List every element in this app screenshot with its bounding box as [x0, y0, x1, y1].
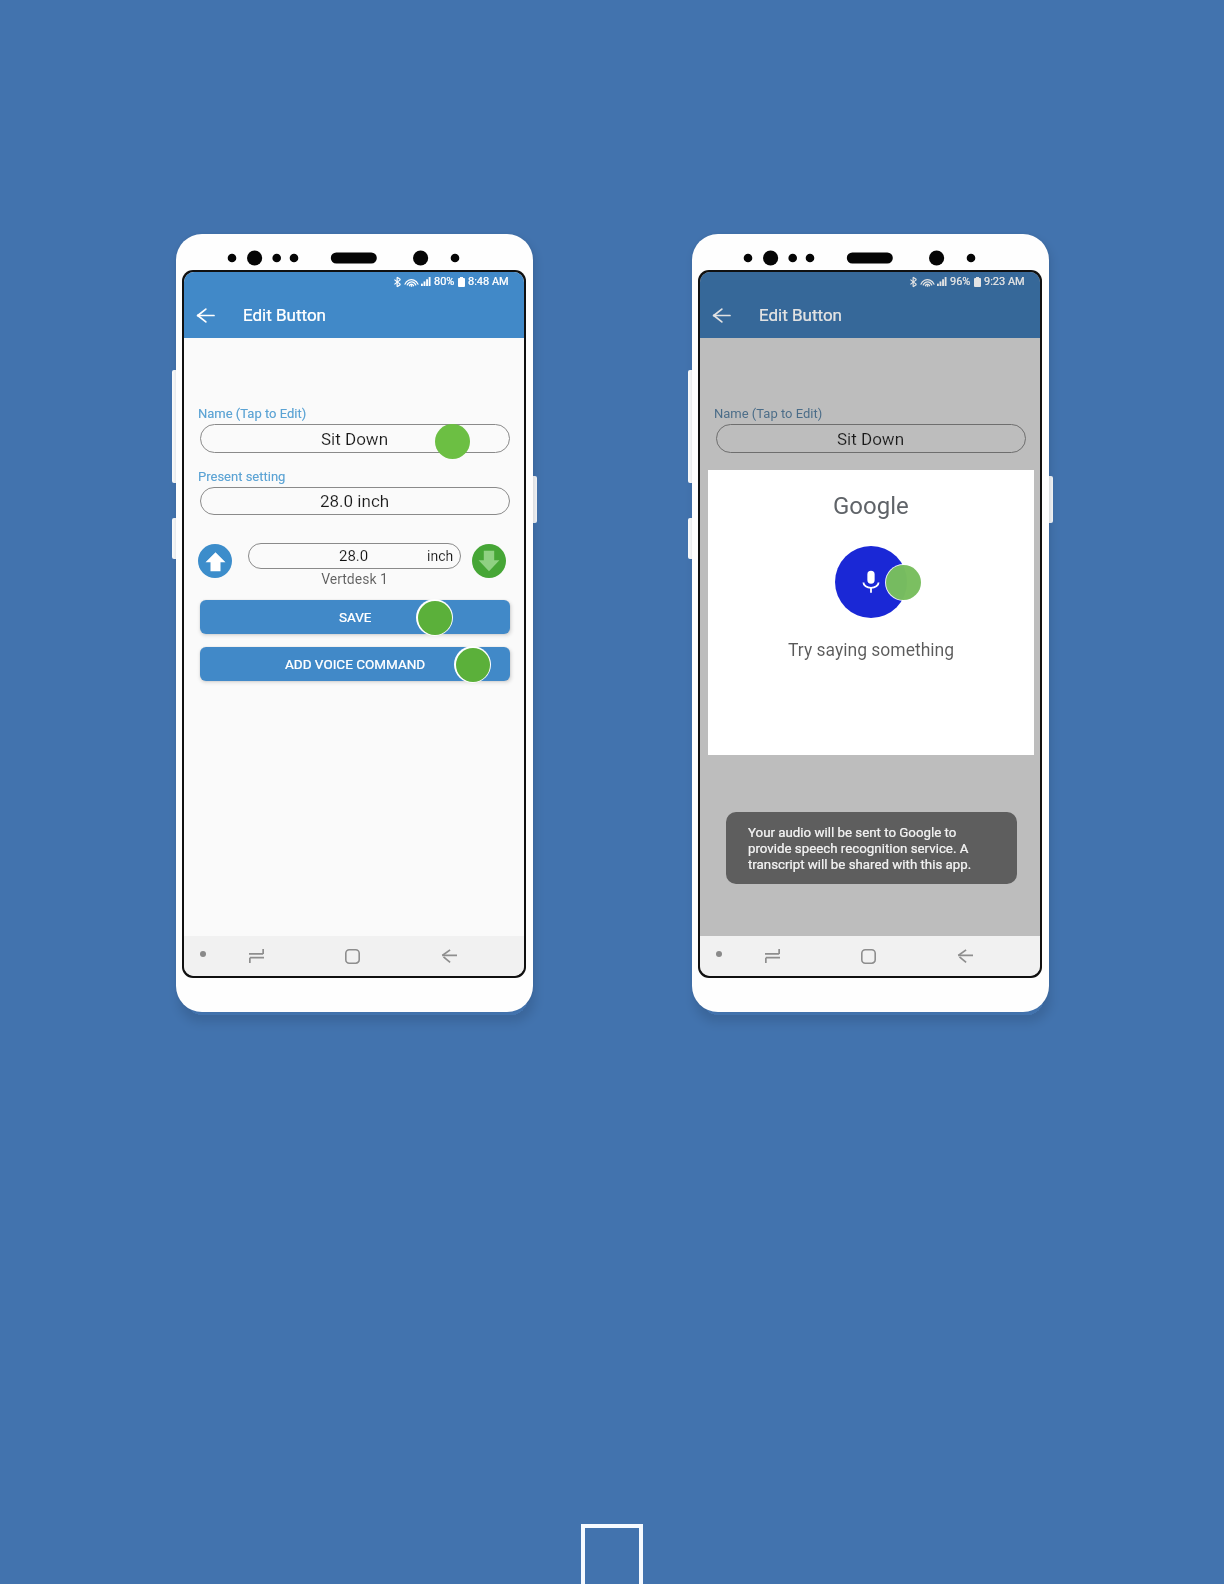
staticText: 8:48 AM [468, 275, 509, 288]
staticText: Sit Down [837, 429, 905, 449]
staticText: Name (Tap to Edit) [714, 406, 823, 421]
button[interactable]: Home [330, 943, 374, 969]
button[interactable]: Home [846, 943, 890, 969]
button[interactable]: Lower desk [472, 544, 506, 578]
staticText: ADD VOICE COMMAND [285, 656, 426, 672]
button[interactable]: Recent apps [234, 943, 278, 969]
staticText: Sit Down [321, 429, 389, 449]
button[interactable]: Back [943, 943, 987, 969]
staticText: transcript will be shared with this app. [748, 857, 972, 873]
button[interactable]: Back [427, 943, 471, 969]
staticText: Edit Button [243, 305, 327, 325]
staticText: provide speech recognition service. A [748, 841, 969, 857]
staticText: Try saying something [788, 640, 955, 661]
staticText: Vertdesk 1 [248, 571, 461, 587]
button[interactable]: ADD VOICE COMMAND [200, 647, 510, 681]
staticText: Present setting [198, 469, 286, 484]
staticText: 28.0 inch [320, 491, 390, 511]
staticText: inch [427, 548, 454, 564]
staticText: 96% [950, 275, 971, 288]
button[interactable]: Recent apps [750, 943, 794, 969]
staticText: Google [833, 492, 909, 520]
staticText: Your audio will be sent to Google to [748, 825, 957, 841]
staticText: 80% [434, 275, 455, 288]
staticText: Name (Tap to Edit) [198, 406, 307, 421]
button[interactable]: SAVE [200, 600, 510, 634]
button[interactable]: Back [706, 300, 737, 331]
staticText: SAVE [339, 609, 372, 625]
button[interactable]: Back [190, 300, 221, 331]
button[interactable]: Sit Down [200, 424, 510, 453]
button[interactable]: Raise desk [198, 544, 232, 578]
staticText: Edit Button [759, 305, 843, 325]
staticText: 28.0 [339, 547, 369, 565]
staticText: 9:23 AM [984, 275, 1025, 288]
